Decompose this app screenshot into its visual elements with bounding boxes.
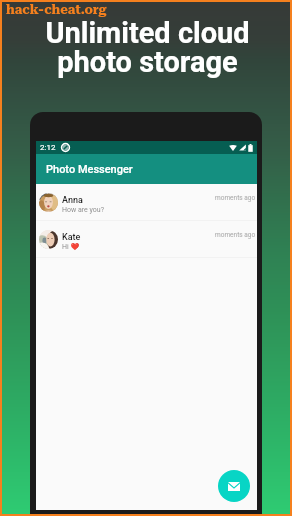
staticText: photo storage <box>57 45 238 79</box>
staticText: How are you? <box>62 206 104 214</box>
staticText: moments ago <box>215 194 256 202</box>
staticText: Kate <box>62 232 81 243</box>
staticText: 2:12 <box>40 143 56 152</box>
staticText: Hi ❤ <box>62 243 80 251</box>
staticText: hack-cheat.org <box>6 2 107 17</box>
button[interactable]: Anna <box>36 184 257 220</box>
staticText: moments ago <box>215 231 256 239</box>
staticText: Unlimited cloud <box>45 16 250 50</box>
button[interactable]: Compose new message <box>218 470 250 502</box>
staticText: Anna <box>62 195 83 206</box>
button[interactable]: Photo Messenger <box>36 154 257 184</box>
staticText: Photo Messenger <box>46 163 133 176</box>
button[interactable]: Kate <box>36 221 257 257</box>
